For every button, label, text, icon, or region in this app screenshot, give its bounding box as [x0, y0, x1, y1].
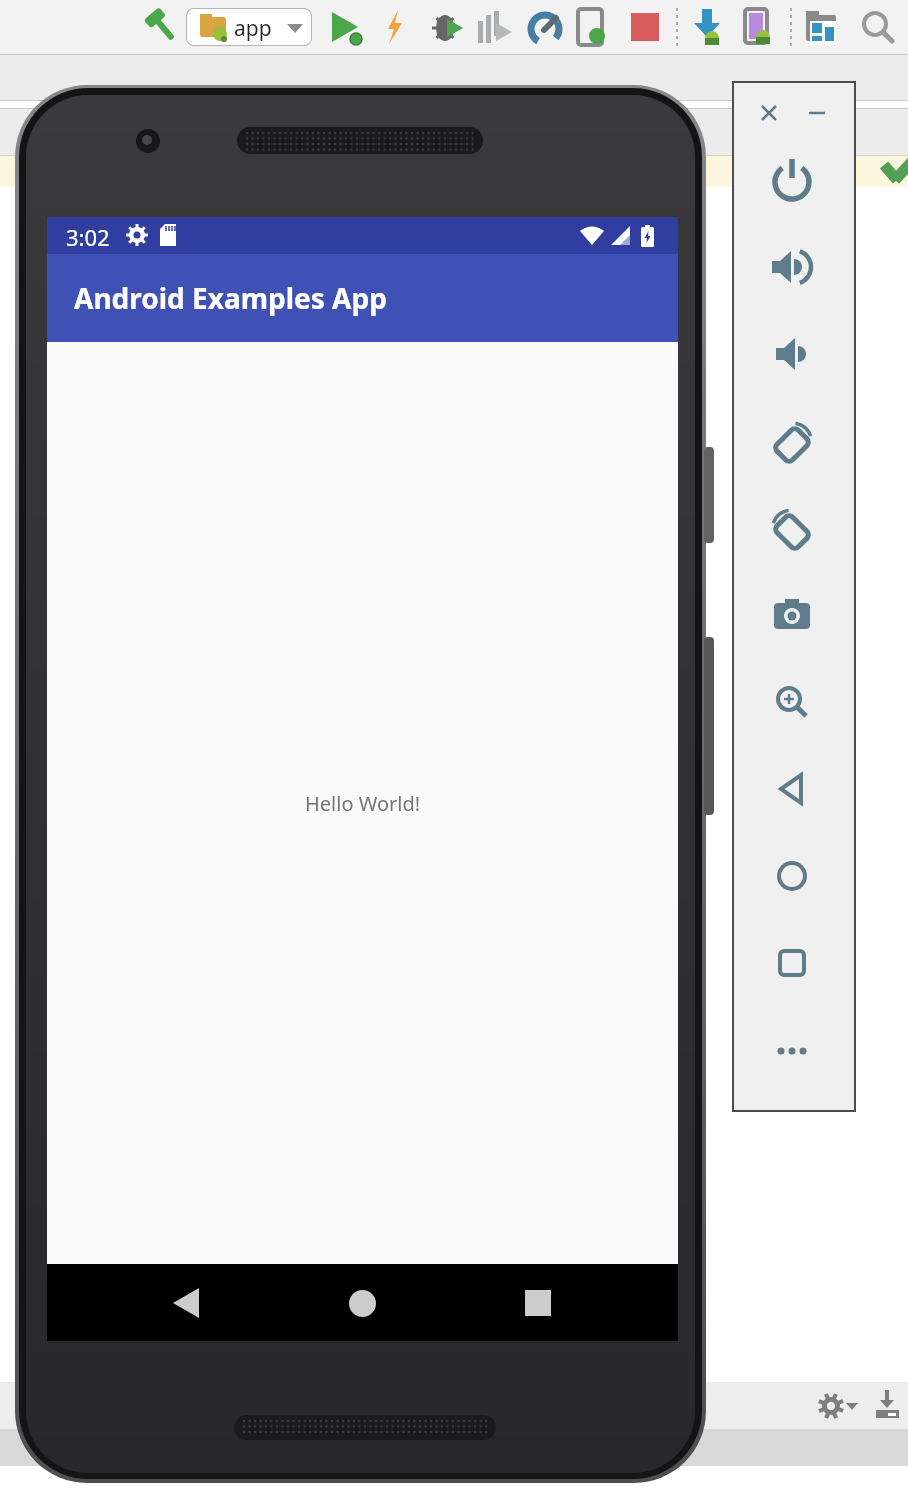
button[interactable]: [799, 95, 835, 131]
button[interactable]: [770, 332, 814, 376]
button[interactable]: [166, 1283, 206, 1323]
button[interactable]: [330, 12, 366, 48]
button[interactable]: [770, 506, 814, 550]
button[interactable]: [770, 680, 814, 724]
button[interactable]: [814, 1390, 860, 1424]
button[interactable]: [578, 9, 614, 45]
button[interactable]: app: [186, 8, 312, 46]
button[interactable]: [862, 11, 898, 47]
button[interactable]: [342, 1283, 382, 1323]
button[interactable]: [143, 9, 179, 45]
button[interactable]: [751, 95, 787, 131]
staticText: 3:02: [66, 222, 110, 252]
button[interactable]: [770, 593, 814, 637]
button[interactable]: [770, 854, 814, 898]
button[interactable]: [770, 419, 814, 463]
button[interactable]: [745, 9, 781, 45]
button[interactable]: [770, 1029, 814, 1073]
button[interactable]: [770, 158, 814, 202]
button[interactable]: [770, 941, 814, 985]
button[interactable]: [806, 11, 842, 47]
button[interactable]: [478, 11, 514, 47]
staticText: Android Examples App: [74, 279, 387, 317]
button[interactable]: [694, 9, 730, 45]
button[interactable]: [518, 1283, 558, 1323]
staticText: Hello World!: [305, 790, 421, 817]
staticText: app: [234, 14, 272, 43]
button[interactable]: [432, 11, 468, 47]
button[interactable]: [770, 767, 814, 811]
button[interactable]: [631, 13, 667, 49]
button[interactable]: [380, 10, 416, 46]
button[interactable]: [528, 12, 564, 48]
button[interactable]: [770, 245, 814, 289]
button[interactable]: [872, 1388, 902, 1420]
